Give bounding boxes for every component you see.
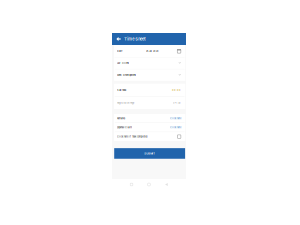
button[interactable]: Recent apps (130, 183, 133, 186)
staticText: 25 Jul 2020 (146, 50, 159, 53)
button[interactable]: Remarks (114, 114, 185, 123)
button[interactable]: Registration Page (114, 97, 185, 109)
staticText: Click here (170, 117, 181, 120)
staticText: Registration Page (117, 101, 134, 104)
staticText: Sub Task (117, 89, 126, 91)
staticText: Click here if Task completed (117, 135, 147, 138)
button[interactable]: Click here if Task completed (114, 132, 185, 141)
staticText: Time Sheet (124, 37, 145, 41)
button[interactable]: SUBMIT (114, 148, 185, 159)
button[interactable]: Sub Task (114, 84, 185, 96)
button[interactable]: Time Sheet (112, 33, 186, 45)
button[interactable]: Date (114, 45, 185, 57)
button[interactable]: L&T Client (114, 57, 185, 69)
button[interactable]: Back (165, 183, 168, 186)
staticText: Remarks (117, 117, 125, 120)
staticText: Date (117, 50, 122, 53)
staticText: 04:30 (173, 101, 181, 104)
staticText: 00:00 (172, 89, 181, 91)
staticText: Click here (170, 126, 181, 129)
staticText: Expense Claim (117, 126, 132, 129)
staticText: L&T Client (117, 62, 129, 65)
button[interactable]: Home (147, 183, 150, 186)
staticText: SUBMIT (144, 152, 155, 155)
button[interactable]: Expense Claim (114, 123, 185, 132)
staticText: WEB Development (117, 74, 136, 76)
button[interactable]: WEB Development (114, 69, 185, 81)
